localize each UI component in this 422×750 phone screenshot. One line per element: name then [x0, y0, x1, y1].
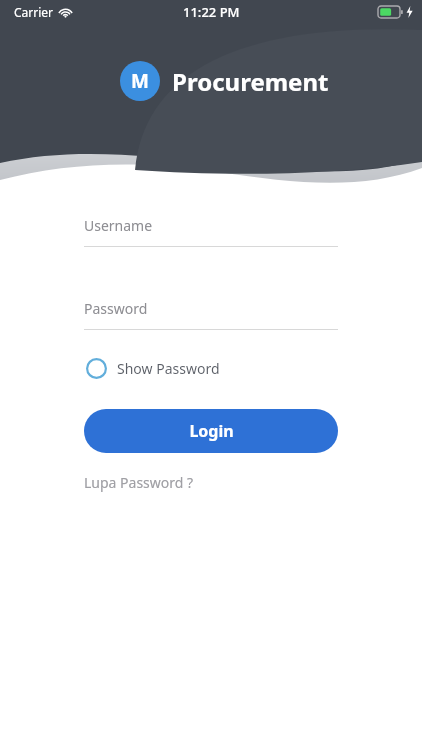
- staticText: Password: [84, 299, 148, 318]
- staticText: 11:22 PM: [183, 3, 240, 21]
- button[interactable]: Password: [84, 299, 338, 330]
- staticText: Login: [189, 420, 234, 442]
- staticText: Carrier: [14, 4, 54, 20]
- staticText: Username: [84, 216, 153, 235]
- staticText: Show Password: [117, 359, 220, 378]
- button[interactable]: Show Password: [84, 354, 222, 383]
- button[interactable]: Lupa Password ?: [82, 471, 196, 494]
- staticText: Procurement: [172, 65, 329, 98]
- button[interactable]: Username: [84, 216, 338, 247]
- button[interactable]: Login: [84, 409, 338, 453]
- staticText: M: [131, 68, 149, 94]
